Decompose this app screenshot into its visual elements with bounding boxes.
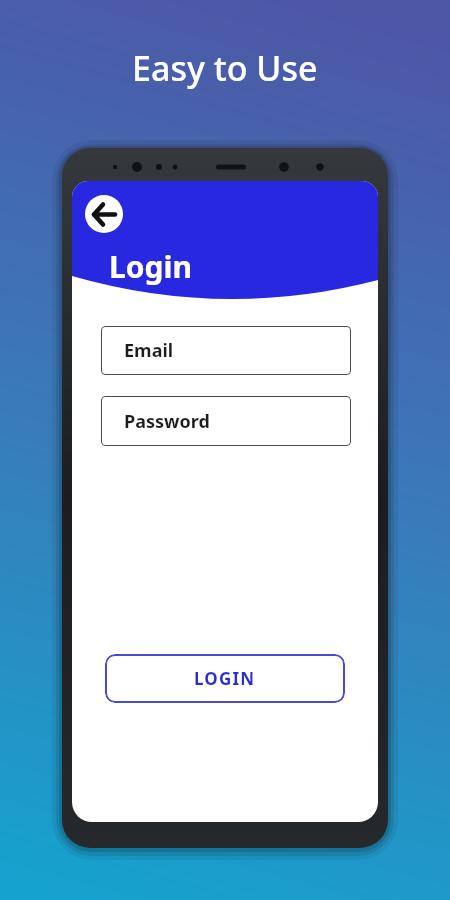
staticText: Email: [124, 338, 174, 363]
staticText: Login: [109, 246, 192, 287]
button[interactable]: [85, 195, 123, 233]
button[interactable]: LOGIN: [105, 654, 345, 703]
button[interactable]: Email: [101, 326, 351, 375]
staticText: LOGIN: [194, 667, 256, 690]
staticText: Easy to Use: [132, 45, 318, 91]
button[interactable]: Password: [101, 396, 351, 446]
staticText: Password: [124, 409, 210, 434]
